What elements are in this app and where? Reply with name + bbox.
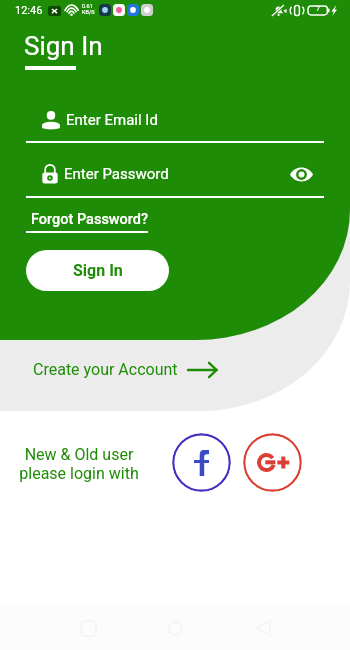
button[interactable]: Create your Account bbox=[27, 355, 224, 384]
staticText: Enter Password bbox=[64, 165, 169, 183]
button[interactable]: Sign In bbox=[26, 250, 169, 291]
button[interactable]: Show password bbox=[288, 161, 314, 187]
staticText: Enter Email Id bbox=[66, 111, 158, 129]
button[interactable]: Forgot Password? bbox=[24, 206, 156, 232]
button[interactable]: Sign in with Facebook bbox=[172, 433, 231, 492]
staticText: Forgot Password? bbox=[31, 211, 149, 228]
staticText: Create your Account bbox=[33, 360, 178, 379]
staticText: 12:46 bbox=[15, 4, 43, 17]
staticText: Sign In bbox=[73, 261, 123, 280]
staticText: New & Old user please login with bbox=[19, 445, 139, 483]
staticText: 0.61 KB/S bbox=[82, 3, 95, 15]
staticText: Sign In bbox=[24, 31, 103, 61]
staticText: 7 bbox=[316, 5, 320, 13]
button[interactable]: Sign in with Google Plus bbox=[243, 433, 302, 492]
